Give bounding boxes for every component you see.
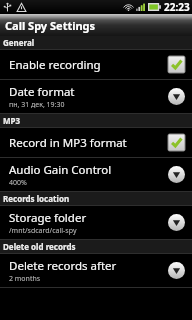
button[interactable]: Date format [0, 80, 192, 113]
button[interactable]: Storage folder [0, 206, 192, 239]
staticText: 2 months [9, 274, 41, 284]
staticText: Call Spy Settings [5, 18, 96, 33]
button[interactable]: Open selection dialog [168, 166, 185, 183]
button[interactable]: Open selection dialog [168, 262, 185, 279]
staticText: MP3 [3, 115, 21, 126]
button[interactable]: Open selection dialog [168, 214, 185, 231]
staticText: General [3, 37, 35, 48]
staticText: Delete old records [3, 241, 76, 252]
staticText: пн, 31 дек, 19:30 [9, 100, 65, 110]
staticText: Records location [3, 193, 70, 204]
button[interactable]: Enabled checkbox [168, 134, 185, 151]
button[interactable]: Delete records after [0, 254, 192, 287]
button[interactable]: Enabled checkbox [168, 56, 185, 73]
staticText: Delete records after [9, 258, 117, 274]
staticText: Date format [9, 84, 75, 100]
button[interactable]: Enable recording [0, 50, 192, 79]
staticText: 22:23 [164, 0, 190, 14]
staticText: /mnt/sdcard/call-spy [9, 226, 77, 236]
button[interactable]: Audio Gain Control [0, 158, 192, 191]
staticText: Enable recording [9, 57, 101, 73]
button[interactable]: Record in MP3 format [0, 128, 192, 157]
staticText: 400% [9, 178, 27, 188]
staticText: Storage folder [9, 210, 87, 226]
staticText: Audio Gain Control [9, 162, 112, 178]
button[interactable]: Open selection dialog [168, 88, 185, 105]
staticText: Record in MP3 format [9, 135, 127, 151]
